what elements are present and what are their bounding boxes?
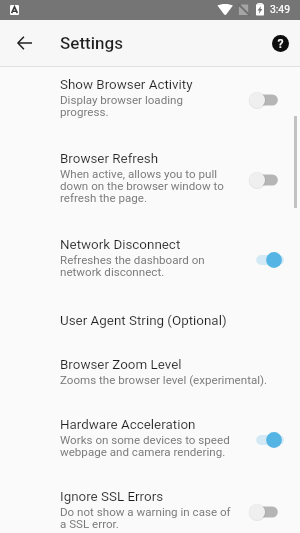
staticText: Show Browser Activity [60,77,193,93]
button[interactable]: Browser Zoom Level [0,348,300,395]
button[interactable]: Switch on [243,426,287,454]
staticText: When active, allows you to pull down on … [60,167,232,204]
button[interactable]: Switch on [243,246,287,274]
staticText: Settings [60,33,123,53]
button[interactable]: User Agent String (Optional) [0,304,300,338]
staticText: 3:49 [270,3,291,15]
staticText: Refreshes the dashboard on network disco… [60,253,232,278]
staticText: Zooms the browser level (experimental). [60,373,268,387]
button[interactable]: Switch off [243,498,287,526]
button[interactable]: Browser Refresh [0,142,300,213]
staticText: Browser Refresh [60,151,159,167]
staticText: Browser Zoom Level [60,357,182,373]
staticText: ? [277,36,284,51]
staticText: Network Disconnect [60,237,181,253]
staticText: User Agent String (Optional) [60,313,227,329]
button[interactable]: Help [262,25,298,61]
staticText: Ignore SSL Errors [60,489,164,505]
button[interactable]: Back [4,23,44,63]
staticText: Do not show a warning in case of a SSL e… [60,505,232,530]
button[interactable]: Hardware Acceleration [0,408,300,467]
button[interactable]: Switch off [243,86,287,114]
button[interactable]: Ignore SSL Errors [0,480,300,533]
staticText: Display browser loading progress. [60,93,232,118]
staticText: Hardware Acceleration [60,417,196,433]
button[interactable]: Show Browser Activity [0,68,300,127]
button[interactable]: Switch off [243,166,287,194]
button[interactable]: Network Disconnect [0,228,300,287]
staticText: Works on some devices to speed webpage a… [60,433,232,458]
